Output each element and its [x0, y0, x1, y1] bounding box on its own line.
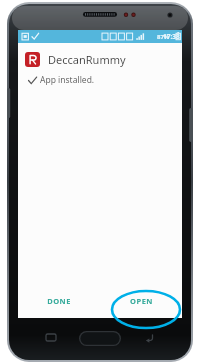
staticText: DeccanRummy — [48, 52, 126, 67]
staticText: 87% — [157, 33, 170, 41]
button[interactable]: OPEN — [100, 291, 182, 311]
staticText: 17:38 — [163, 32, 180, 41]
staticText: App installed. — [40, 74, 95, 86]
staticText: DONE — [47, 296, 71, 306]
staticText: OPEN — [130, 296, 153, 306]
button[interactable]: DONE — [18, 291, 100, 311]
